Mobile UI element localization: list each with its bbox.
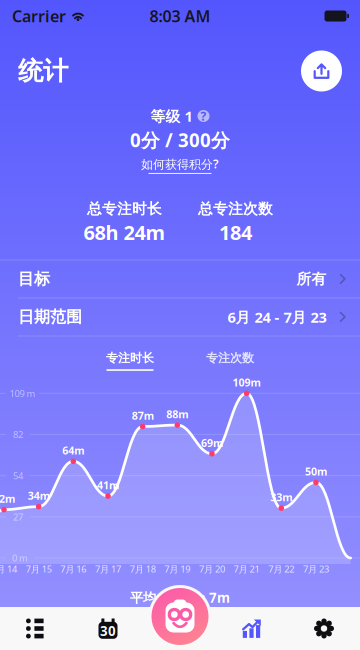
staticText: 69m	[201, 436, 223, 450]
staticText: 50m	[305, 464, 327, 479]
staticText: 27	[13, 511, 23, 523]
staticText: 7月 20	[199, 563, 225, 575]
button[interactable]: Statistics	[216, 607, 288, 650]
button[interactable]: 专注次数	[180, 350, 280, 371]
staticText: Carrier	[12, 5, 66, 27]
staticText: 7月 18	[130, 563, 156, 575]
staticText: 平均 每天 1h 7m	[130, 589, 230, 606]
button[interactable]: Assistant	[148, 585, 211, 648]
staticText: 等级 1	[150, 106, 192, 126]
staticText: 184	[219, 219, 252, 246]
staticText: 32m	[0, 492, 15, 506]
staticText: 68h 24m	[83, 219, 165, 246]
staticText: 54	[13, 469, 23, 482]
staticText: 0分 / 300分	[130, 128, 230, 152]
button[interactable]: 目标	[0, 260, 360, 297]
staticText: 109m	[233, 375, 261, 389]
button[interactable]: 如何获得积分?	[141, 156, 219, 174]
staticText: 33m	[270, 490, 292, 504]
staticText: 如何获得积分?	[141, 156, 219, 172]
staticText: ?	[200, 108, 206, 124]
staticText: 87m	[132, 408, 154, 423]
staticText: 41m	[97, 478, 119, 492]
staticText: 目标	[18, 269, 50, 289]
staticText: 7月 16	[60, 563, 86, 575]
button[interactable]: Share	[301, 50, 342, 91]
staticText: 64m	[62, 443, 84, 457]
staticText: 统计	[18, 55, 68, 86]
staticText: 7月 19	[164, 563, 190, 575]
staticText: 30	[100, 622, 116, 640]
button[interactable]: Calendar	[72, 607, 144, 650]
staticText: 所有	[296, 270, 326, 288]
button[interactable]: 日期范围	[0, 298, 360, 335]
staticText: 109 m	[9, 387, 35, 399]
staticText: 34m	[28, 488, 50, 503]
staticText: 专注时长	[106, 350, 154, 365]
button[interactable]: Settings	[288, 607, 360, 650]
button[interactable]: Tasks	[0, 607, 72, 650]
staticText: 82	[13, 428, 23, 441]
staticText: 7月 17	[95, 563, 121, 575]
staticText: 6月 24 - 7月 23	[227, 307, 326, 327]
staticText: 日期范围	[18, 307, 82, 327]
staticText: 7月 23	[303, 563, 329, 575]
button[interactable]: 专注时长	[80, 350, 180, 371]
staticText: 总专注时长	[87, 200, 162, 218]
staticText: 7月 21	[234, 563, 260, 575]
staticText: 总专注次数	[198, 200, 273, 218]
staticText: 7月 22	[268, 563, 294, 575]
staticText: 7月 15	[26, 563, 52, 575]
staticText: 88m	[166, 407, 188, 421]
staticText: 7月 14	[0, 563, 17, 575]
staticText: 专注次数	[206, 350, 254, 365]
staticText: 8:03 AM	[149, 5, 210, 27]
staticText: 0 m	[12, 552, 28, 564]
